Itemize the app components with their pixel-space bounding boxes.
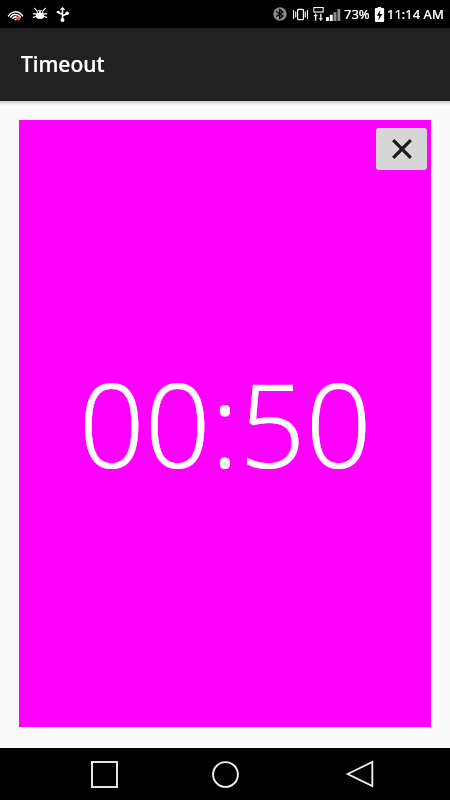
staticText: 11:14 AM (387, 5, 444, 23)
button[interactable]: Recent apps (80, 750, 128, 798)
staticText: 73% (344, 5, 370, 23)
button[interactable]: Back (336, 750, 384, 798)
staticText: Timeout (21, 50, 105, 79)
staticText: 00:50 (78, 344, 372, 502)
button[interactable]: Close (376, 128, 427, 170)
button[interactable]: 00:50 (19, 120, 431, 727)
button[interactable]: Home (201, 750, 249, 798)
